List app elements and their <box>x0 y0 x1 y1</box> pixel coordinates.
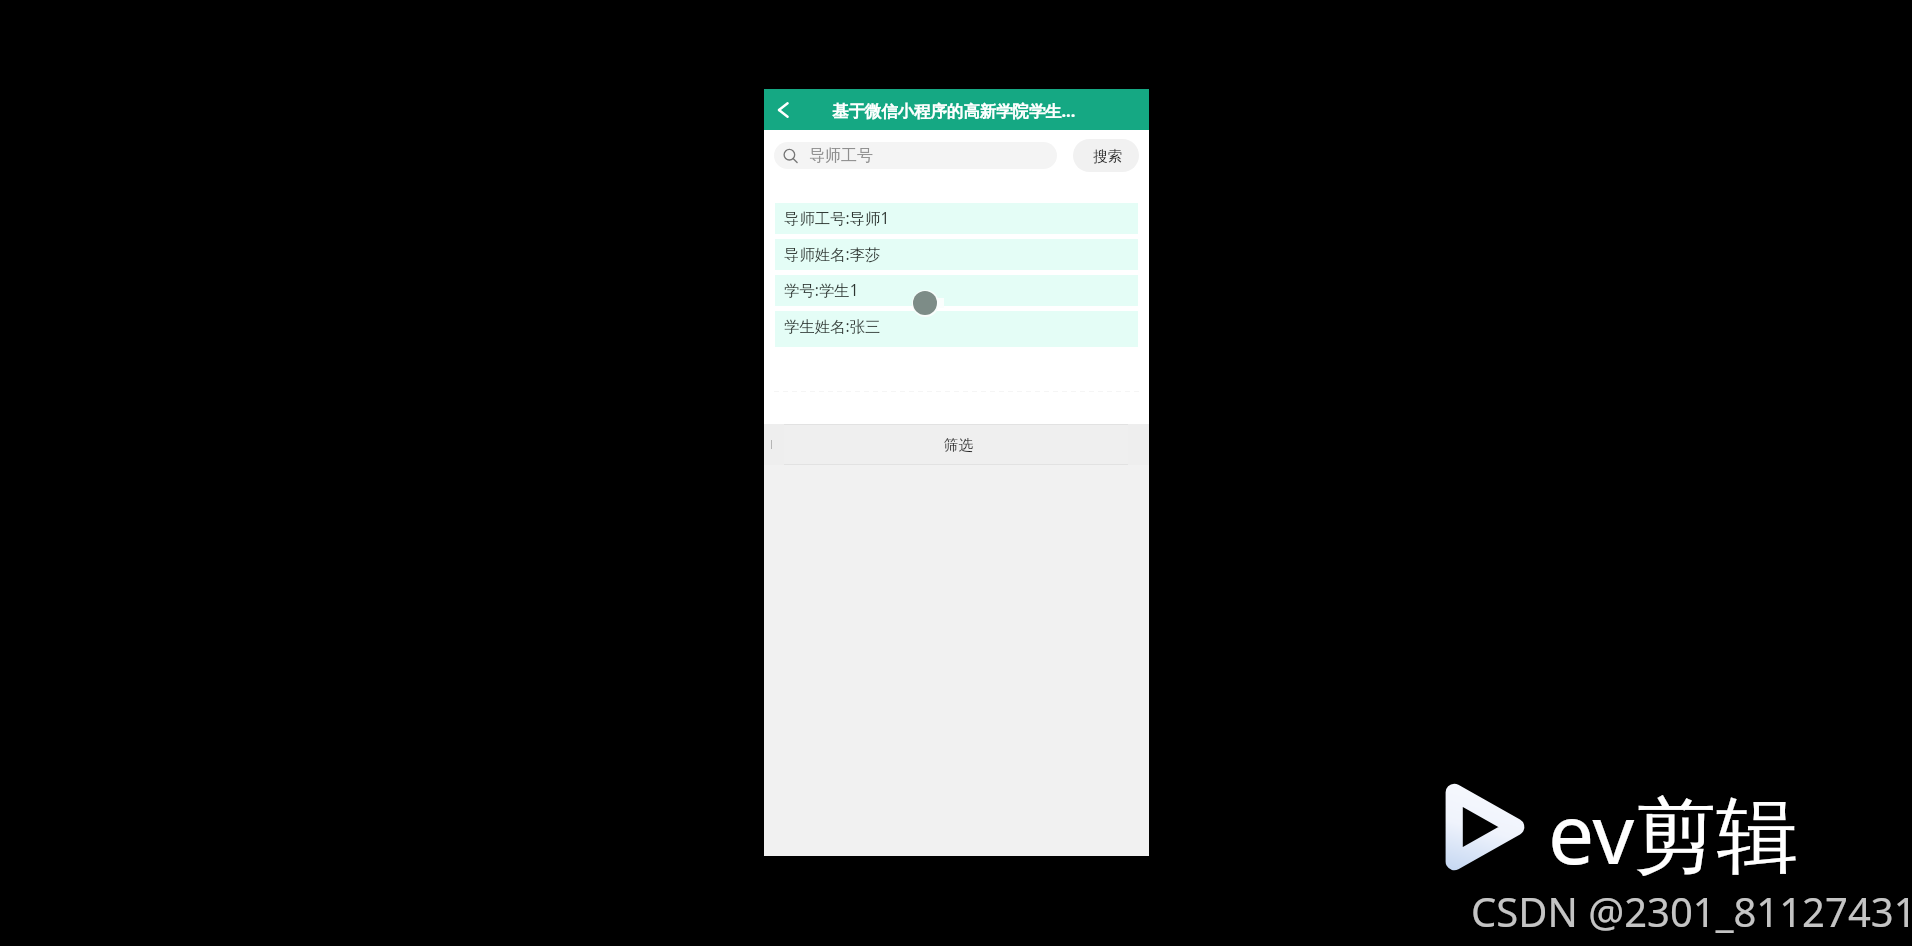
button[interactable]: Back <box>764 92 800 128</box>
staticText: ev剪辑 <box>1548 776 1799 888</box>
staticText: 学生姓名:张三 <box>784 316 881 337</box>
button[interactable]: 导师工号 <box>774 142 1057 169</box>
button[interactable]: 学号:学生1 <box>775 275 1138 311</box>
staticText: CSDN @2301_81127431 <box>1471 884 1912 938</box>
button[interactable]: 导师工号:导师1 <box>775 203 1138 239</box>
button[interactable]: 搜索 <box>1073 139 1139 172</box>
button[interactable]: 学生姓名:张三 <box>775 311 1138 347</box>
staticText: 基于微信小程序的高新学院学生... <box>832 99 1076 121</box>
staticText: 筛选 <box>944 436 973 454</box>
button[interactable]: 筛选 <box>764 424 1149 465</box>
staticText: 导师工号:导师1 <box>784 208 890 229</box>
staticText: 导师姓名:李莎 <box>784 244 881 265</box>
staticText: 学号:学生1 <box>784 280 859 301</box>
staticText: 搜索 <box>1093 147 1122 165</box>
button[interactable]: 导师姓名:李莎 <box>775 239 1138 275</box>
staticText: 导师工号 <box>809 146 873 166</box>
